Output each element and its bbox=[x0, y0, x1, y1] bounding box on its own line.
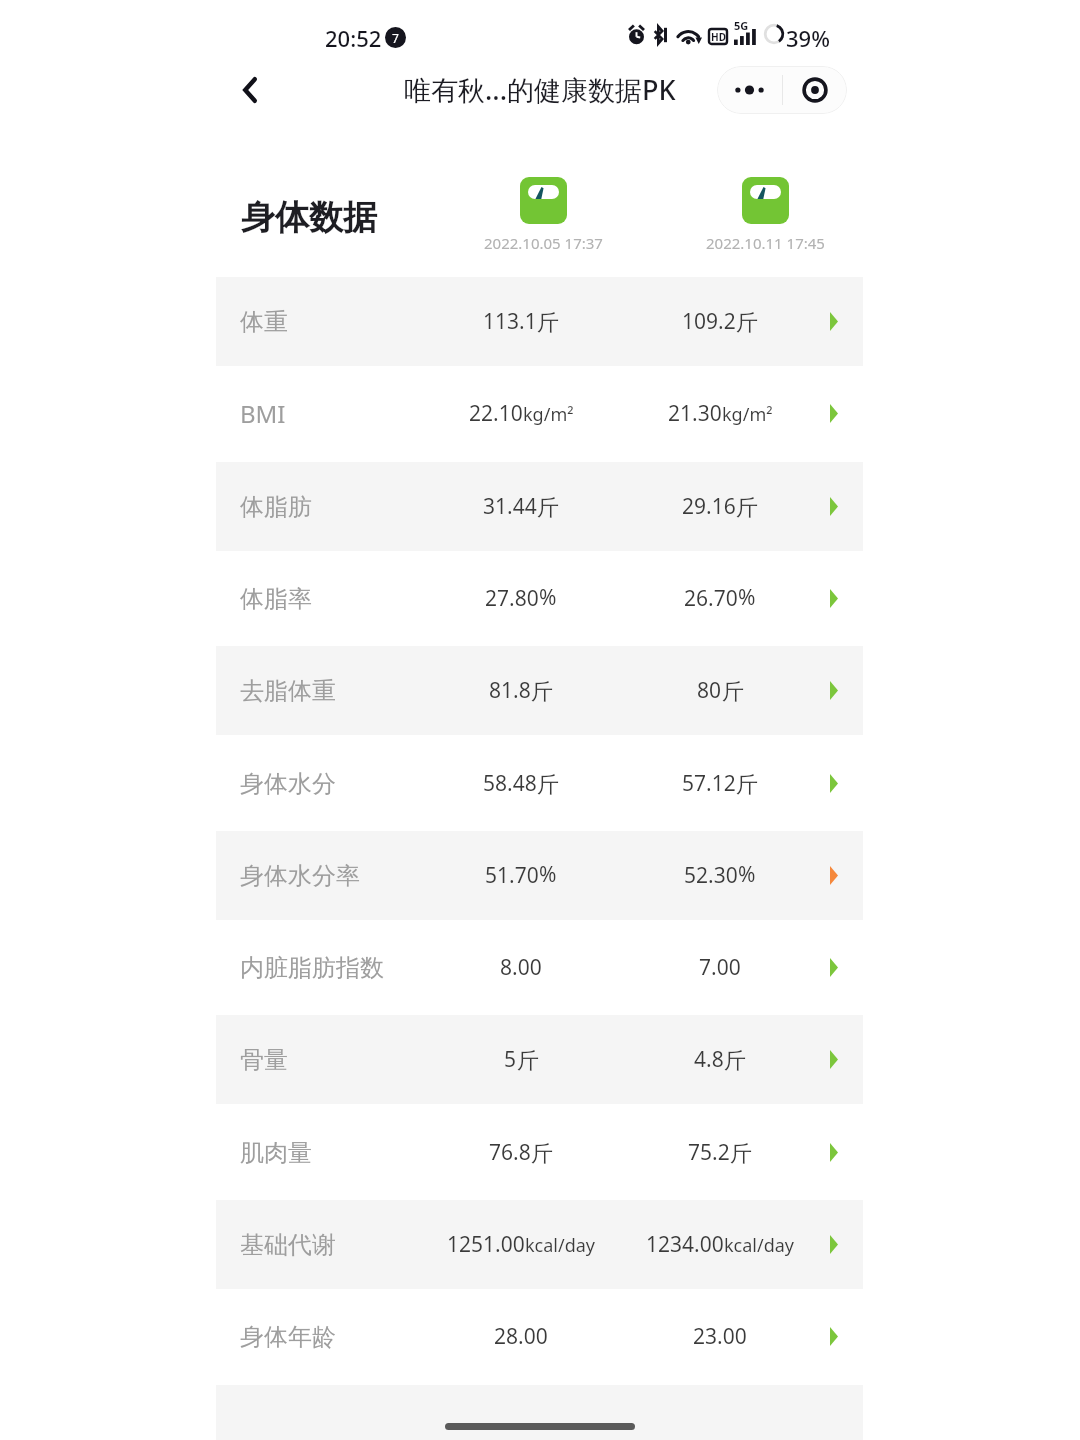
staticText: 体重 bbox=[240, 307, 288, 337]
staticText: 身体数据 bbox=[241, 196, 377, 239]
button[interactable]: 体脂肪 bbox=[216, 462, 863, 551]
staticText: 76.8 bbox=[489, 1138, 531, 1167]
staticText: 身体水分 bbox=[240, 769, 336, 799]
staticText: % bbox=[738, 583, 756, 612]
staticText: HD bbox=[711, 30, 726, 44]
staticText: 斤 bbox=[722, 678, 744, 706]
staticText: 22.10 bbox=[469, 399, 523, 428]
staticText: % bbox=[738, 860, 756, 889]
staticText: 斤 bbox=[537, 309, 559, 337]
staticText: 80 bbox=[697, 676, 722, 705]
staticText: 斤 bbox=[537, 494, 559, 522]
button[interactable]: 去脂体重 bbox=[216, 646, 863, 735]
staticText: 51.70 bbox=[485, 861, 539, 890]
staticText: 骨量 bbox=[240, 1045, 288, 1075]
staticText: kg/m² bbox=[722, 402, 773, 427]
staticText: 7 bbox=[392, 30, 399, 46]
staticText: 5 bbox=[504, 1045, 517, 1074]
staticText: 斤 bbox=[736, 309, 758, 337]
staticText: 唯有秋...的健康数据PK bbox=[404, 71, 676, 108]
button[interactable]: More options bbox=[717, 66, 782, 114]
staticText: 7.00 bbox=[699, 953, 741, 982]
button[interactable]: BMI bbox=[216, 369, 863, 458]
button[interactable]: 内脏脂肪指数 bbox=[216, 923, 863, 1012]
button[interactable]: 身体水分率 bbox=[216, 831, 863, 920]
staticText: 21.30 bbox=[668, 399, 722, 428]
staticText: 39% bbox=[786, 23, 830, 53]
staticText: 8.00 bbox=[500, 953, 542, 982]
button[interactable]: 体重 bbox=[216, 277, 863, 366]
staticText: 斤 bbox=[724, 1047, 746, 1075]
button[interactable]: 身体年龄 bbox=[216, 1292, 863, 1381]
staticText: 肌肉量 bbox=[240, 1138, 312, 1168]
staticText: 斤 bbox=[736, 494, 758, 522]
staticText: 28.00 bbox=[494, 1322, 548, 1351]
staticText: 81.8 bbox=[489, 676, 531, 705]
staticText: 27.80 bbox=[485, 584, 539, 613]
staticText: 斤 bbox=[531, 1140, 553, 1168]
button[interactable]: 肌肉量 bbox=[216, 1108, 863, 1197]
button[interactable]: Back bbox=[222, 62, 278, 118]
staticText: % bbox=[539, 860, 557, 889]
staticText: 2022.10.05 17:37 bbox=[484, 233, 603, 253]
staticText: kg/m² bbox=[523, 402, 574, 427]
staticText: 57.12 bbox=[682, 769, 736, 798]
staticText: 斤 bbox=[730, 1140, 752, 1168]
staticText: 斤 bbox=[517, 1047, 539, 1075]
staticText: 内脏脂肪指数 bbox=[240, 953, 384, 983]
staticText: 109.2 bbox=[682, 307, 736, 336]
staticText: 58.48 bbox=[483, 769, 537, 798]
staticText: 29.16 bbox=[682, 492, 736, 521]
staticText: 身体水分率 bbox=[240, 861, 360, 891]
staticText: 75.2 bbox=[688, 1138, 730, 1167]
button[interactable]: 基础代谢 bbox=[216, 1200, 863, 1289]
button[interactable]: Close bbox=[782, 66, 847, 114]
staticText: 113.1 bbox=[483, 307, 537, 336]
staticText: 26.70 bbox=[684, 584, 738, 613]
staticText: 斤 bbox=[736, 771, 758, 799]
button[interactable]: 骨量 bbox=[216, 1015, 863, 1104]
staticText: 5G bbox=[734, 18, 749, 33]
staticText: 20:52 bbox=[325, 23, 382, 53]
staticText: 31.44 bbox=[483, 492, 537, 521]
staticText: 1251.00 bbox=[447, 1230, 525, 1259]
staticText: 23.00 bbox=[693, 1322, 747, 1351]
staticText: 体脂率 bbox=[240, 584, 312, 614]
staticText: 1234.00 bbox=[646, 1230, 724, 1259]
staticText: % bbox=[539, 583, 557, 612]
staticText: 基础代谢 bbox=[240, 1230, 336, 1260]
staticText: 4.8 bbox=[694, 1045, 724, 1074]
staticText: 去脂体重 bbox=[240, 676, 336, 706]
staticText: 体脂肪 bbox=[240, 492, 312, 522]
button[interactable]: 体脂率 bbox=[216, 554, 863, 643]
staticText: kcal/day bbox=[724, 1233, 795, 1258]
staticText: BMI bbox=[240, 397, 286, 430]
button[interactable]: 身体水分 bbox=[216, 739, 863, 828]
staticText: 斤 bbox=[531, 678, 553, 706]
staticText: kcal/day bbox=[525, 1233, 596, 1258]
staticText: 身体年龄 bbox=[240, 1322, 336, 1352]
staticText: 斤 bbox=[537, 771, 559, 799]
staticText: 52.30 bbox=[684, 861, 738, 890]
staticText: 2022.10.11 17:45 bbox=[706, 233, 825, 253]
